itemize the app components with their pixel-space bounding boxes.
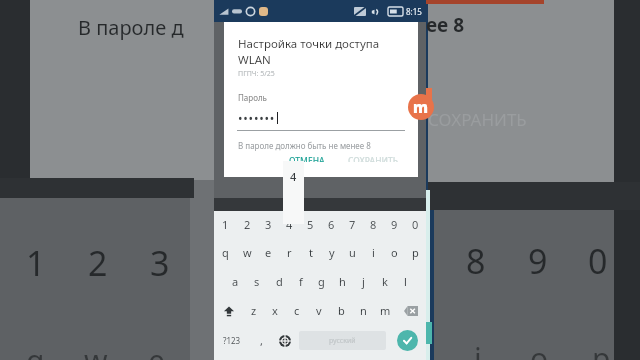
staticText: p <box>592 338 611 360</box>
staticText: ?123 <box>223 335 241 346</box>
staticText: i <box>372 245 375 260</box>
staticText: СОХРАНИТЬ <box>348 155 399 162</box>
button[interactable]: 0 <box>405 211 426 238</box>
staticText: d <box>276 274 283 289</box>
staticText: t <box>309 245 313 260</box>
staticText: q <box>26 340 45 360</box>
button[interactable]: o <box>384 238 405 267</box>
button[interactable]: z <box>243 296 264 325</box>
button[interactable]: f <box>290 267 311 296</box>
button[interactable]: 2 <box>236 211 258 238</box>
button[interactable]: v <box>308 296 330 325</box>
button[interactable]: r <box>279 238 300 267</box>
button[interactable]: n <box>352 296 374 325</box>
button[interactable]: Shift <box>214 296 243 325</box>
staticText: g <box>318 274 325 289</box>
button[interactable]: a <box>224 267 246 296</box>
staticText: b <box>338 303 345 318</box>
staticText: Настройка точки доступа WLAN <box>238 36 404 68</box>
button[interactable]: Backspace <box>396 296 426 325</box>
button[interactable]: w <box>236 238 258 267</box>
staticText: x <box>272 303 278 318</box>
button[interactable]: i <box>363 238 384 267</box>
button[interactable]: p <box>405 238 426 267</box>
staticText: w <box>243 245 252 260</box>
button[interactable]: b <box>330 296 352 325</box>
staticText: p <box>412 245 419 260</box>
button[interactable]: u <box>342 238 363 267</box>
button[interactable]: t <box>300 238 321 267</box>
staticText: w <box>84 340 108 360</box>
button[interactable]: 9 <box>384 211 405 238</box>
staticText: Пароль <box>238 92 267 103</box>
staticText: 2 <box>244 217 251 232</box>
staticText: l <box>404 274 407 289</box>
staticText: 8 <box>370 217 377 232</box>
staticText: 7 <box>349 217 356 232</box>
button[interactable]: СОХРАНИТЬ <box>341 151 406 166</box>
button[interactable]: 7 <box>342 211 363 238</box>
button[interactable]: j <box>353 267 374 296</box>
staticText: ПГПЧ: 5/25 <box>238 69 275 79</box>
button[interactable]: c <box>286 296 308 325</box>
staticText: 3 <box>150 240 170 286</box>
staticText: ••••••• <box>238 110 276 126</box>
button[interactable]: s <box>246 267 268 296</box>
staticText: m <box>380 303 391 318</box>
button[interactable]: g <box>311 267 332 296</box>
button[interactable]: , <box>250 325 273 356</box>
button[interactable]: Space <box>299 331 386 350</box>
button[interactable]: 5 <box>300 211 321 238</box>
staticText: o <box>391 245 398 260</box>
staticText: 8 <box>466 238 486 284</box>
button[interactable]: 8 <box>363 211 384 238</box>
button[interactable]: Done <box>389 325 426 356</box>
button[interactable]: h <box>332 267 353 296</box>
staticText: 1 <box>26 240 46 286</box>
staticText: 6 <box>328 217 335 232</box>
staticText: 4 <box>290 169 297 184</box>
button[interactable]: 6 <box>321 211 342 238</box>
staticText: c <box>294 303 300 318</box>
staticText: , <box>260 333 263 348</box>
staticText: m <box>413 97 429 117</box>
staticText: a <box>232 274 239 289</box>
staticText: z <box>251 303 257 318</box>
staticText: русский <box>329 336 356 346</box>
staticText: i <box>474 338 482 360</box>
staticText: e <box>148 340 165 360</box>
button[interactable]: ОТМЕНА <box>282 151 332 166</box>
button[interactable]: m <box>374 296 396 325</box>
button[interactable]: e <box>258 238 279 267</box>
staticText: k <box>382 274 388 289</box>
staticText: 3 <box>265 217 272 232</box>
button[interactable]: Change language <box>273 325 296 356</box>
button[interactable]: x <box>264 296 286 325</box>
staticText: СОХРАНИТЬ <box>428 108 527 131</box>
button[interactable]: k <box>374 267 395 296</box>
button[interactable]: 4 <box>279 211 300 238</box>
staticText: n <box>360 303 367 318</box>
staticText: 0 <box>412 217 419 232</box>
button[interactable]: l <box>395 267 416 296</box>
staticText: ОТМЕНА <box>289 155 325 162</box>
staticText: f <box>299 274 303 289</box>
staticText: 9 <box>528 238 548 284</box>
button[interactable]: d <box>268 267 290 296</box>
button[interactable]: 3 <box>258 211 279 238</box>
staticText: o <box>530 338 549 360</box>
staticText: 1 <box>222 217 229 232</box>
staticText: 4 <box>286 217 293 232</box>
button[interactable]: ?123 <box>214 325 250 356</box>
staticText: ее 8 <box>426 12 465 38</box>
staticText: j <box>362 274 365 289</box>
staticText: y <box>329 245 335 260</box>
staticText: 0 <box>588 238 608 284</box>
staticText: u <box>349 245 356 260</box>
button[interactable]: q <box>214 238 236 267</box>
staticText: q <box>222 245 229 260</box>
button[interactable]: y <box>321 238 342 267</box>
button[interactable]: 1 <box>214 211 236 238</box>
staticText: 5 <box>307 217 314 232</box>
staticText: v <box>316 303 322 318</box>
